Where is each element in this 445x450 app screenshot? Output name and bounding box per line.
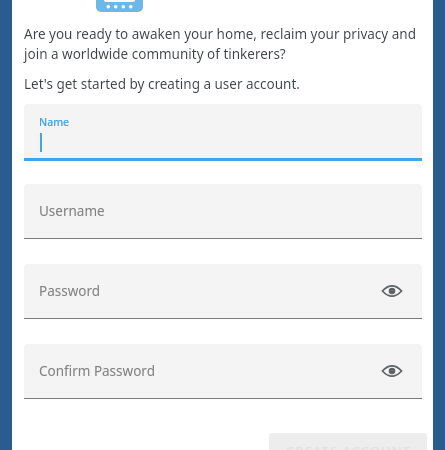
staticText: Password [39, 282, 101, 300]
button[interactable]: Show password [378, 277, 406, 305]
staticText: CREATE ACCOUNT [286, 442, 411, 450]
staticText: Are you ready to awaken your home, recla… [24, 25, 416, 43]
button[interactable]: Name [24, 104, 422, 161]
button[interactable]: Username [24, 184, 422, 240]
staticText: Username [39, 202, 105, 220]
button[interactable]: Show password [378, 357, 406, 385]
staticText: Confirm Password [39, 362, 155, 380]
button[interactable]: Confirm Password [24, 344, 422, 400]
staticText: join a worldwide community of tinkerers? [24, 45, 286, 63]
staticText: Let's get started by creating a user acc… [24, 75, 300, 93]
button[interactable]: Password [24, 264, 422, 320]
staticText: Name [39, 115, 70, 129]
